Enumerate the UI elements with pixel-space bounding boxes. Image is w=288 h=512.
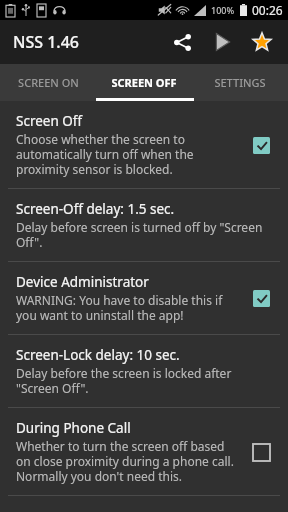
staticText: WARNING: You have to disable this if you… xyxy=(16,292,236,323)
button[interactable]: Screen Off xyxy=(0,101,288,188)
staticText: 100% xyxy=(211,4,235,16)
button[interactable]: SCREEN ON xyxy=(0,64,96,101)
staticText: NSS 1.46 xyxy=(13,31,79,53)
staticText: Delay before screen is turned off by "Sc… xyxy=(16,219,270,250)
button[interactable]: Disabled xyxy=(244,435,278,469)
button[interactable]: Enabled xyxy=(244,128,278,162)
button[interactable]: Share xyxy=(162,22,202,62)
staticText: Whether to turn the screen off based on … xyxy=(16,438,236,484)
staticText: Screen Off xyxy=(16,112,83,130)
staticText: Delay before the screen is locked after … xyxy=(16,365,270,396)
button[interactable]: Open in Google Play xyxy=(202,22,242,62)
staticText: SCREEN OFF xyxy=(111,75,177,90)
button[interactable]: Rate app xyxy=(242,22,282,62)
staticText: Choose whether the screen to automatical… xyxy=(16,131,236,177)
staticText: During Phone Call xyxy=(16,419,131,437)
button[interactable]: SCREEN OFF xyxy=(96,64,192,101)
button[interactable]: SETTINGS xyxy=(192,64,288,101)
button[interactable]: Screen-Lock delay: 10 sec. xyxy=(0,335,288,407)
staticText: SCREEN ON xyxy=(18,75,79,90)
staticText: SETTINGS xyxy=(214,75,266,90)
staticText: Screen-Lock delay: 10 sec. xyxy=(16,346,180,364)
staticText: 00:26 xyxy=(252,2,283,18)
staticText: Screen-Off delay: 1.5 sec. xyxy=(16,200,175,218)
button[interactable]: Screen-Off delay: 1.5 sec. xyxy=(0,189,288,261)
button[interactable]: During Phone Call xyxy=(0,408,288,495)
staticText: Device Administrator xyxy=(16,273,149,291)
button[interactable]: Enabled xyxy=(244,281,278,315)
button[interactable]: Device Administrator xyxy=(0,262,288,334)
